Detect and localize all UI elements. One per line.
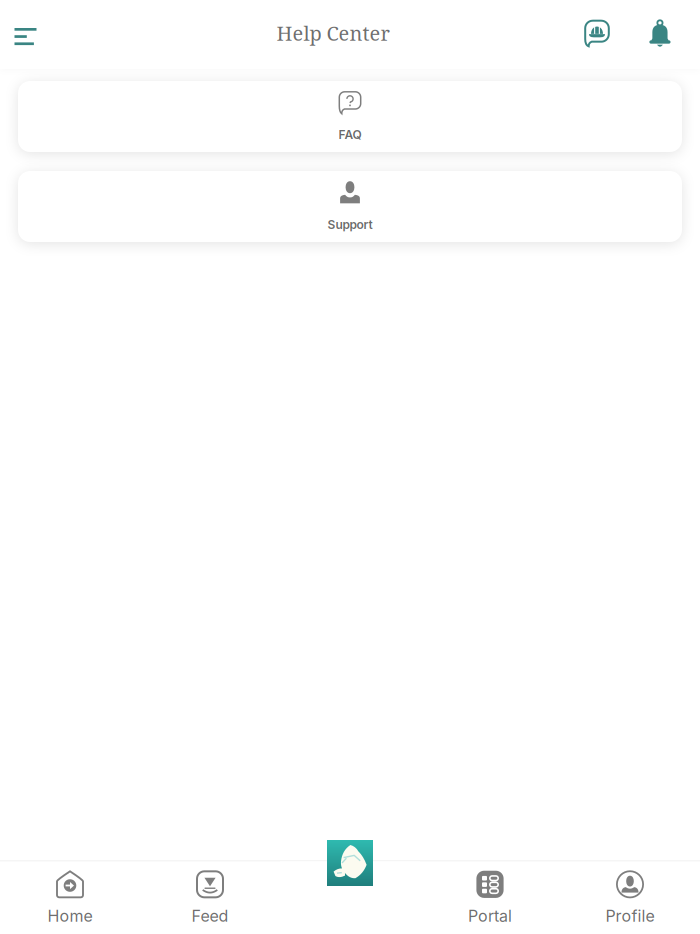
staticText: Home bbox=[47, 906, 92, 926]
button[interactable]: Home bbox=[0, 861, 140, 934]
button[interactable]: Feed bbox=[140, 861, 280, 934]
staticText: Support bbox=[327, 217, 372, 232]
button[interactable]: Profile bbox=[560, 861, 700, 934]
button[interactable]: FAQ bbox=[18, 81, 682, 152]
button[interactable]: Support bbox=[18, 171, 682, 242]
staticText: Feed bbox=[191, 906, 228, 926]
staticText: Portal bbox=[468, 906, 512, 926]
button[interactable]: Messages bbox=[571, 7, 624, 61]
button[interactable]: Notifications bbox=[634, 7, 686, 61]
button[interactable]: Menu bbox=[2, 0, 49, 69]
button[interactable]: Portal bbox=[420, 861, 560, 934]
staticText: FAQ bbox=[338, 127, 361, 142]
staticText: Help Center bbox=[276, 19, 389, 47]
staticText: Profile bbox=[605, 906, 654, 926]
